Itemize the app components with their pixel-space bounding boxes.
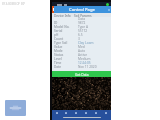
button[interactable]: Status (52, 53, 111, 57)
button[interactable]: Soil Params (74, 13, 92, 18)
staticText: Auto (78, 49, 86, 53)
button[interactable]: Logo (5, 100, 26, 116)
staticText: Type Soil (54, 41, 68, 45)
button[interactable]: Type Soil (52, 41, 111, 45)
staticText: Get Data (75, 72, 89, 76)
staticText: Active (78, 53, 87, 57)
staticText: Device Info (54, 14, 71, 18)
staticText: 12:24:05 (78, 61, 91, 65)
staticText: Value (54, 45, 63, 49)
button[interactable]: Level (52, 57, 111, 61)
staticText: Level (54, 57, 62, 61)
button[interactable]: Mode (52, 49, 111, 53)
staticText: 55172 (78, 29, 88, 33)
button[interactable]: Serial (52, 29, 111, 33)
staticText: Serial (54, 29, 63, 33)
staticText: Clay Loam (78, 41, 94, 45)
staticText: Med (78, 45, 85, 49)
staticText: ID (54, 21, 58, 25)
staticText: Count (54, 37, 64, 41)
button[interactable]: Recents (71, 110, 81, 116)
staticText: Soil Params (74, 14, 92, 18)
button[interactable]: Menu (81, 110, 91, 116)
button[interactable]: Back (52, 110, 61, 116)
button[interactable]: Count (52, 37, 111, 41)
button[interactable]: Home (61, 110, 71, 116)
staticText: BY A BOMB OF EXP (2, 2, 26, 6)
staticText: Mode (54, 49, 63, 53)
button[interactable]: Device Info (54, 13, 71, 18)
button[interactable]: Apps (91, 110, 101, 116)
button[interactable]: Model No. (52, 25, 111, 29)
button[interactable]: Data (52, 17, 111, 21)
staticText: Type A (78, 25, 88, 29)
staticText: 6.5 (78, 33, 83, 37)
button[interactable]: pH (52, 33, 111, 37)
staticText: Nov 11 2020 (78, 65, 97, 69)
staticText: pH (54, 33, 59, 37)
button[interactable]: Value (52, 45, 111, 49)
staticText: Model No. (54, 25, 70, 29)
staticText: Date (54, 65, 62, 69)
button[interactable]: More options (106, 6, 111, 13)
button[interactable]: Get Data (52, 71, 111, 77)
button[interactable]: Settings (101, 110, 111, 116)
button[interactable]: Time (52, 61, 111, 65)
staticText: Data (78, 17, 86, 21)
staticText: Medium (78, 57, 91, 61)
button[interactable]: Back (52, 6, 54, 13)
button[interactable]: ID (52, 21, 111, 25)
staticText: 9872 (78, 21, 86, 25)
staticText: Control Page (69, 7, 95, 13)
staticText: Time (54, 61, 62, 65)
staticText: 3 (78, 37, 80, 41)
staticText: Status (54, 53, 64, 57)
button[interactable]: Date (52, 65, 111, 69)
